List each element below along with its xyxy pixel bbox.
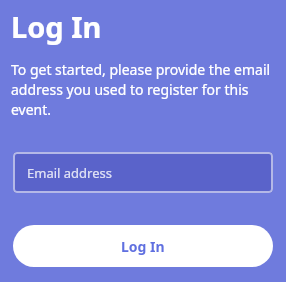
staticText: To get started, please provide the email… [11,60,271,119]
staticText: Log In [121,237,165,256]
button[interactable]: Log In [13,225,273,267]
staticText: Email address [27,164,112,182]
staticText: Log In [11,7,102,46]
button[interactable]: Email address [13,152,273,193]
